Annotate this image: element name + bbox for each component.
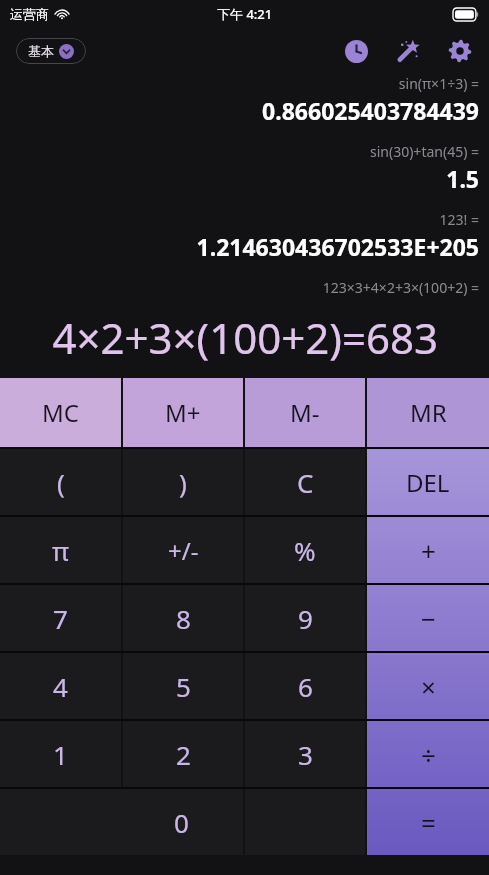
staticText: 9 bbox=[298, 601, 313, 636]
staticText: 123×3+4×2+3×(100+2) = bbox=[10, 278, 479, 296]
staticText: ÷ bbox=[421, 737, 436, 772]
button[interactable]: 2 bbox=[123, 721, 243, 787]
staticText: = bbox=[421, 805, 436, 840]
button[interactable]: ( bbox=[0, 449, 121, 515]
staticText: +/- bbox=[168, 534, 199, 567]
button[interactable]: 7 bbox=[0, 585, 121, 651]
staticText: 2 bbox=[176, 737, 191, 772]
button[interactable]: 0 bbox=[0, 789, 243, 855]
staticText: × bbox=[421, 669, 436, 704]
staticText: 4 bbox=[53, 669, 68, 704]
staticText: ) bbox=[179, 465, 187, 500]
staticText: 1.214630436702533E+205 bbox=[10, 231, 479, 262]
staticText: − bbox=[421, 601, 436, 636]
staticText: M- bbox=[290, 396, 320, 429]
button[interactable]: + bbox=[367, 517, 489, 583]
button[interactable]: − bbox=[367, 585, 489, 651]
button[interactable]: Settings bbox=[445, 36, 475, 66]
button[interactable]: Magic bbox=[393, 36, 423, 66]
button[interactable]: × bbox=[367, 653, 489, 719]
button[interactable]: +/- bbox=[123, 517, 243, 583]
staticText: DEL bbox=[406, 466, 450, 499]
button[interactable]: DEL bbox=[367, 449, 489, 515]
staticText: 下午 4:21 bbox=[217, 5, 273, 23]
button[interactable]: MR bbox=[367, 378, 489, 447]
button[interactable]: % bbox=[245, 517, 365, 583]
button[interactable]: 1 bbox=[0, 721, 121, 787]
button[interactable]: History bbox=[341, 36, 371, 66]
staticText: 3 bbox=[298, 737, 313, 772]
staticText: sin(π×1÷3) = bbox=[10, 74, 479, 93]
staticText: π bbox=[52, 533, 69, 568]
button[interactable]: 5 bbox=[123, 653, 243, 719]
staticText: 4×2+3×(100+2)=683 bbox=[52, 309, 438, 366]
staticText: 1 bbox=[53, 737, 68, 772]
button[interactable]: 6 bbox=[245, 653, 365, 719]
staticText: 基本 bbox=[28, 43, 54, 59]
button[interactable]: π bbox=[0, 517, 121, 583]
staticText: MR bbox=[410, 396, 447, 429]
button[interactable]: M- bbox=[245, 378, 365, 447]
button[interactable]: 3 bbox=[245, 721, 365, 787]
staticText: 5 bbox=[176, 669, 191, 704]
staticText: 1.5 bbox=[10, 163, 479, 194]
staticText: 7 bbox=[53, 601, 68, 636]
button[interactable]: = bbox=[367, 789, 489, 855]
staticText: + bbox=[421, 533, 436, 568]
staticText: 运营商 bbox=[10, 6, 49, 22]
staticText: 6 bbox=[298, 669, 313, 704]
button[interactable]: 9 bbox=[245, 585, 365, 651]
button[interactable]: 基本 bbox=[16, 38, 86, 64]
staticText: 0.866025403784439 bbox=[10, 95, 479, 126]
button[interactable]: C bbox=[245, 449, 365, 515]
button[interactable]: 4 bbox=[0, 653, 121, 719]
button[interactable]: M+ bbox=[123, 378, 243, 447]
staticText: 0 bbox=[174, 805, 189, 840]
staticText: C bbox=[297, 465, 314, 500]
staticText: MC bbox=[42, 396, 79, 429]
staticText: 8 bbox=[176, 601, 191, 636]
button[interactable]: ) bbox=[123, 449, 243, 515]
button[interactable]: ÷ bbox=[367, 721, 489, 787]
button[interactable]: 8 bbox=[123, 585, 243, 651]
staticText: 123! = bbox=[10, 210, 479, 229]
staticText: sin(30)+tan(45) = bbox=[10, 142, 479, 161]
staticText: M+ bbox=[165, 396, 201, 429]
staticText: ( bbox=[57, 465, 65, 500]
staticText: % bbox=[294, 533, 316, 568]
button[interactable]: MC bbox=[0, 378, 121, 447]
